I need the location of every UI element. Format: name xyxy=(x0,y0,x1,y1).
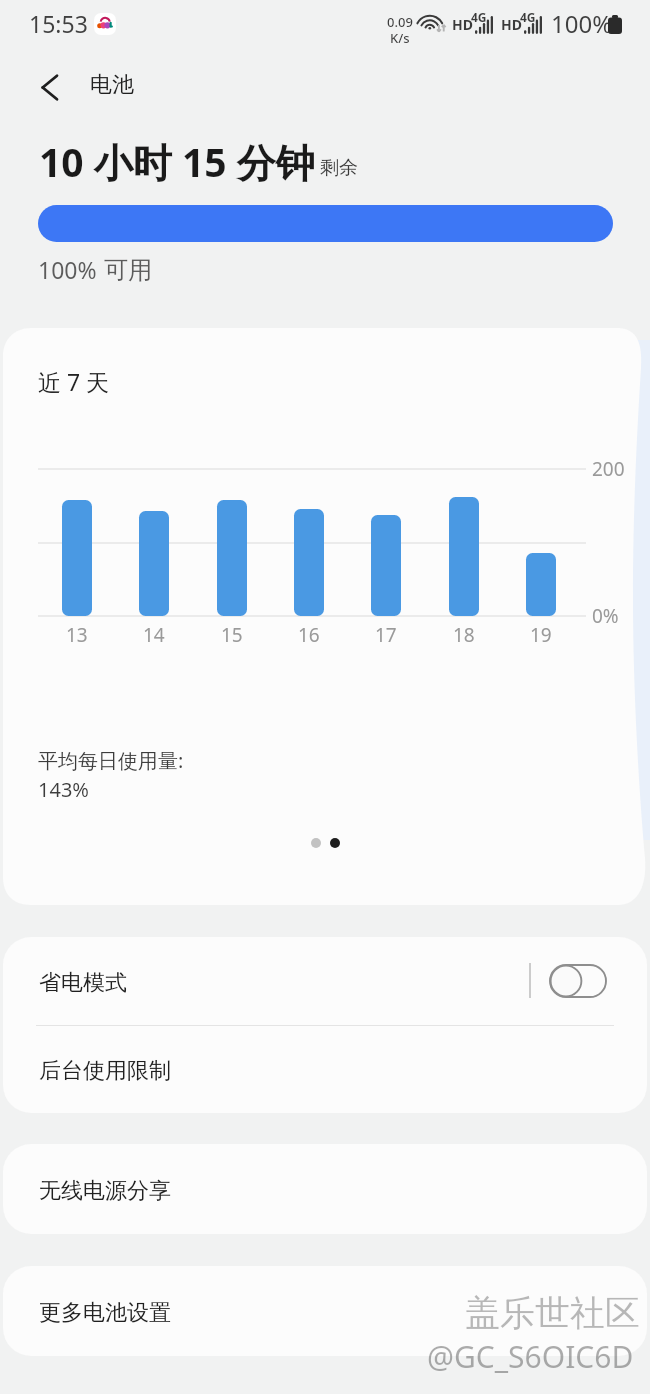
staticText: 143% xyxy=(38,776,89,803)
staticText: 近 7 天 xyxy=(38,366,110,397)
staticText: 14 xyxy=(143,622,165,648)
staticText: 19 xyxy=(530,622,552,648)
button[interactable]: 后台使用限制 xyxy=(3,1025,647,1113)
staticText: 盖乐世社区 xyxy=(467,1293,642,1337)
staticText: 13 xyxy=(66,622,88,648)
button[interactable]: 无线电源分享 xyxy=(3,1144,647,1234)
staticText: @GC_S6OIC6D xyxy=(427,1336,634,1377)
staticText: 4G xyxy=(520,9,536,25)
button[interactable]: Back xyxy=(26,64,72,110)
staticText: 更多电池设置 xyxy=(39,1299,171,1327)
staticText: 可用 xyxy=(104,255,152,285)
staticText: 4G xyxy=(471,9,487,25)
button[interactable]: Power saving mode toggle xyxy=(549,964,607,998)
staticText: 10 小时 15 分钟 xyxy=(39,135,315,188)
staticText: 15:53 xyxy=(29,8,88,39)
button[interactable]: 近 7 天 xyxy=(3,328,632,905)
staticText: 0.09 xyxy=(387,13,413,31)
staticText: K/s xyxy=(390,29,410,47)
button[interactable]: 省电模式 xyxy=(3,937,647,1025)
staticText: 18 xyxy=(453,622,475,648)
staticText: HD xyxy=(452,15,473,34)
staticText: 16 xyxy=(298,622,320,648)
staticText: 100% xyxy=(38,254,97,285)
staticText: @GC_S6OIC6D xyxy=(429,1338,636,1379)
staticText: 剩余 xyxy=(320,156,358,180)
staticText: 100% xyxy=(551,7,613,40)
staticText: 200 xyxy=(592,456,625,482)
staticText: 0% xyxy=(592,603,619,629)
staticText: 平均每日使用量: xyxy=(38,747,184,774)
staticText: 后台使用限制 xyxy=(39,1057,171,1085)
staticText: 省电模式 xyxy=(39,969,127,997)
staticText: 电池 xyxy=(90,71,134,99)
staticText: 17 xyxy=(375,622,397,648)
staticText: 无线电源分享 xyxy=(39,1177,171,1205)
staticText: HD xyxy=(501,15,522,34)
button[interactable]: 更多电池设置 xyxy=(3,1266,647,1356)
staticText: 15 xyxy=(221,622,243,648)
staticText: 盖乐世社区 xyxy=(465,1291,640,1335)
